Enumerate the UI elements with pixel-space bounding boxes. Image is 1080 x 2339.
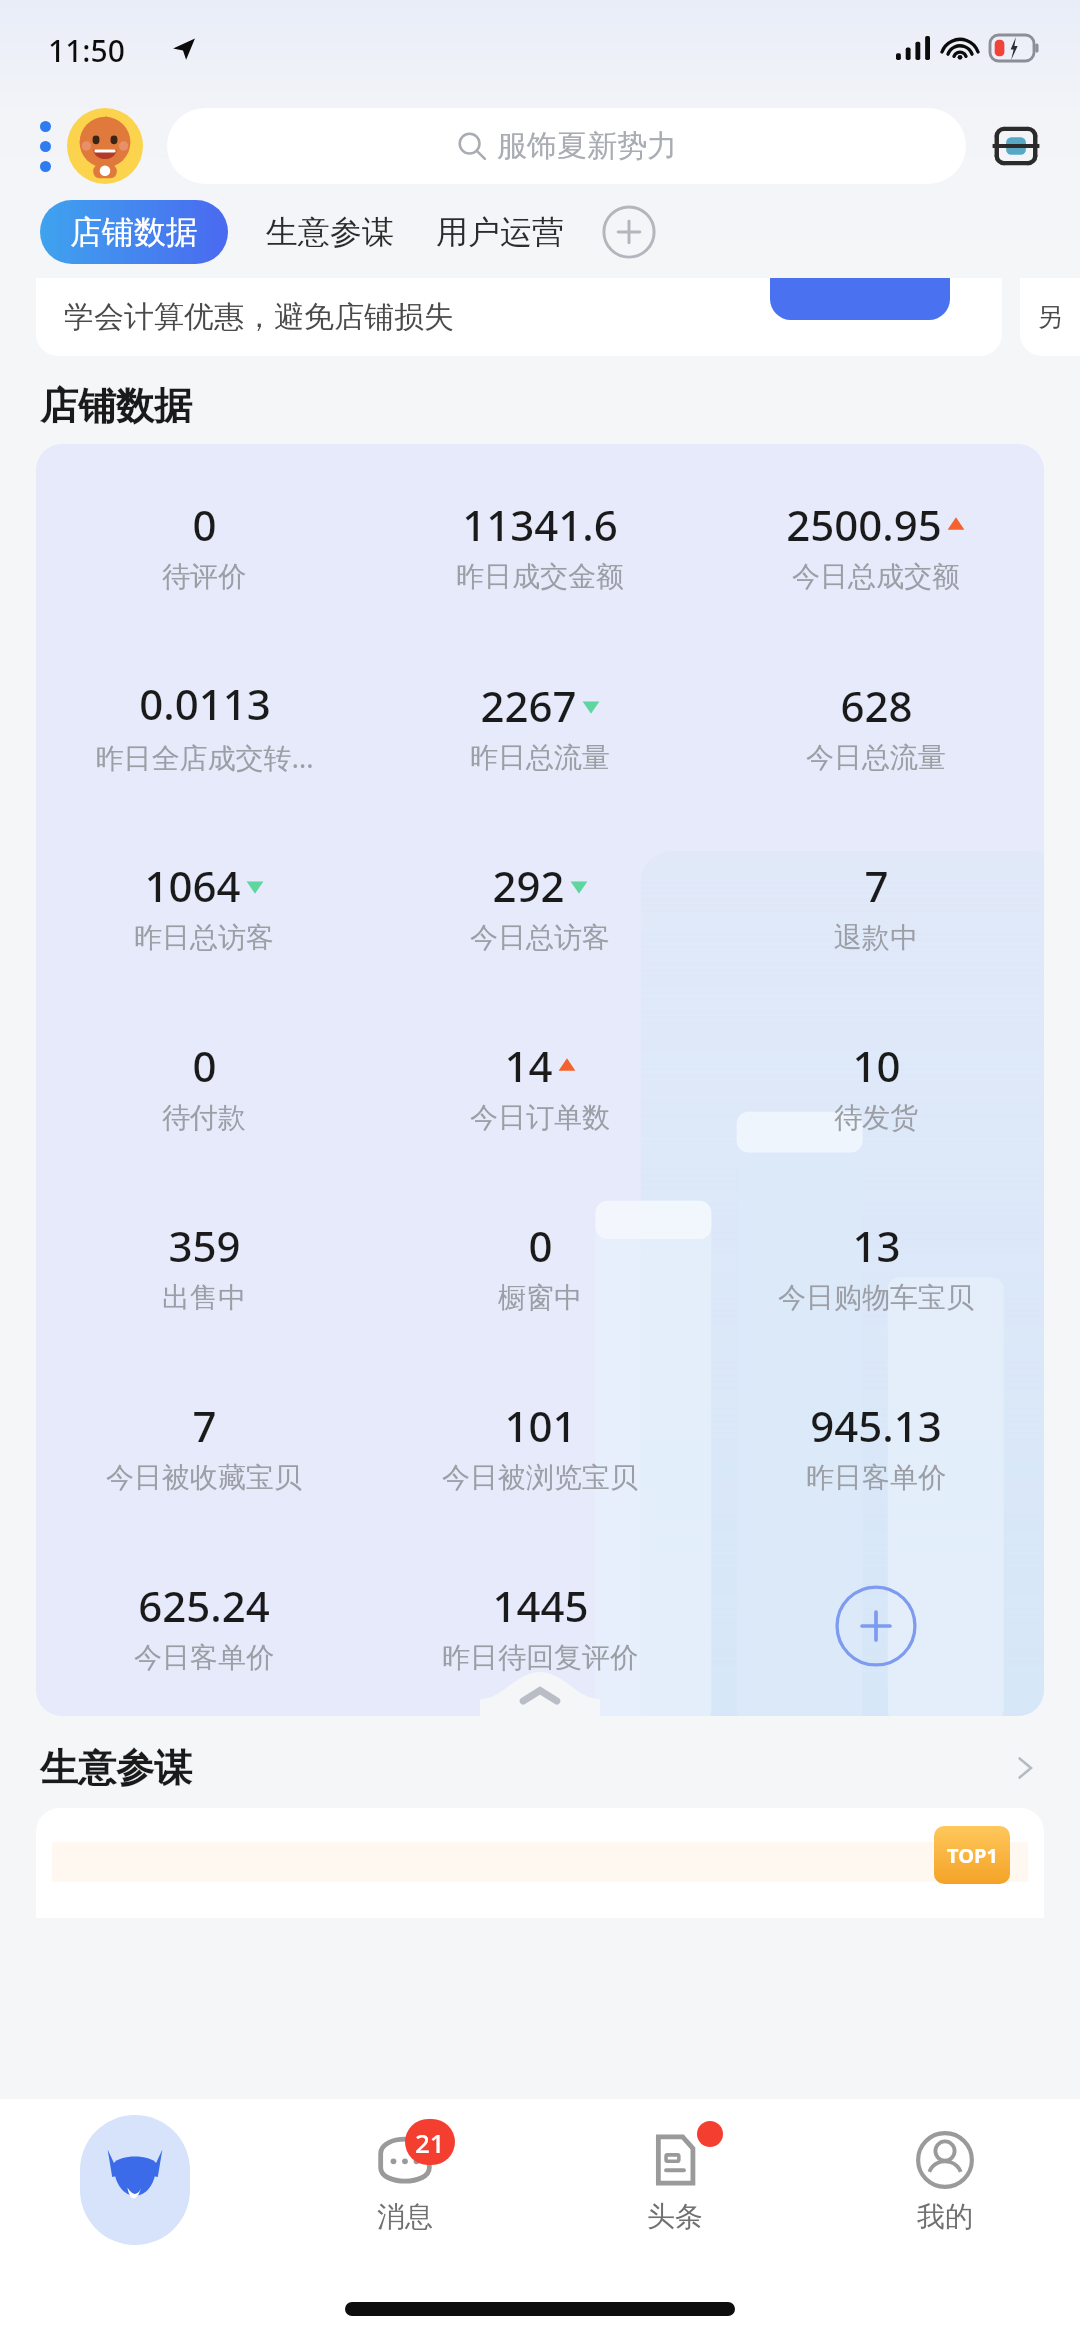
staticText: 退款中 bbox=[834, 920, 918, 955]
staticText: 2500.95 bbox=[786, 496, 942, 553]
staticText: 生意参谋 bbox=[40, 1744, 192, 1792]
staticText: 橱窗中 bbox=[498, 1280, 582, 1315]
button[interactable]: 2267 bbox=[464, 673, 616, 779]
button[interactable]: 2500.95 bbox=[780, 492, 972, 598]
staticText: 待发货 bbox=[834, 1100, 918, 1135]
button[interactable]: 1064 bbox=[128, 853, 280, 959]
button[interactable]: 11341.6 bbox=[450, 492, 630, 598]
staticText: 待付款 bbox=[162, 1100, 246, 1135]
button[interactable]: 0 bbox=[156, 492, 252, 598]
staticText: 生意参谋 bbox=[266, 212, 394, 252]
staticText: 359 bbox=[168, 1217, 241, 1274]
button[interactable]: 0 bbox=[156, 1033, 252, 1139]
staticText: 0 bbox=[192, 496, 217, 553]
other: Home bbox=[80, 2115, 190, 2245]
button[interactable]: 另 bbox=[1020, 278, 1080, 356]
staticText: 另 bbox=[1037, 301, 1063, 334]
staticText: 店铺数据 bbox=[70, 212, 198, 252]
staticText: 今日购物车宝贝 bbox=[778, 1280, 974, 1315]
staticText: 21 bbox=[415, 2125, 445, 2160]
staticText: 0 bbox=[192, 1037, 217, 1094]
button[interactable]: Home bbox=[0, 2115, 270, 2245]
button[interactable]: Collapse bbox=[480, 1672, 600, 1716]
button[interactable]: 生意参谋 bbox=[0, 1738, 1080, 1798]
button[interactable]: 10 bbox=[828, 1033, 924, 1139]
button[interactable]: 生意参谋 bbox=[252, 200, 408, 264]
staticText: 今日客单价 bbox=[134, 1640, 274, 1675]
staticText: 昨日总流量 bbox=[470, 740, 610, 775]
staticText: 14 bbox=[504, 1037, 553, 1094]
staticText: 今日总访客 bbox=[470, 920, 610, 955]
button[interactable]: 店铺数据 bbox=[40, 200, 228, 264]
button[interactable]: 625.24 bbox=[128, 1573, 280, 1679]
button[interactable]: 101 bbox=[436, 1393, 644, 1499]
button[interactable]: 头条 bbox=[540, 2115, 810, 2234]
button[interactable]: 628 bbox=[800, 673, 952, 779]
button[interactable]: 用户运营 bbox=[422, 200, 578, 264]
button[interactable]: Scan bbox=[986, 116, 1046, 176]
button[interactable]: TOP1 bbox=[36, 1808, 1044, 1918]
staticText: 今日被浏览宝贝 bbox=[442, 1460, 638, 1495]
button[interactable]: 21 bbox=[270, 2115, 540, 2234]
staticText: 13 bbox=[852, 1217, 901, 1274]
staticText: 今日总流量 bbox=[806, 740, 946, 775]
staticText: 1445 bbox=[492, 1577, 589, 1634]
button[interactable]: 0.0113 bbox=[89, 671, 320, 780]
staticText: 628 bbox=[840, 677, 913, 734]
staticText: 今日被收藏宝贝 bbox=[106, 1460, 302, 1495]
staticText: 0.0113 bbox=[139, 675, 271, 732]
staticText: 服饰夏新势力 bbox=[497, 127, 677, 165]
button[interactable]: 7 bbox=[828, 853, 924, 959]
button[interactable]: 945.13 bbox=[800, 1393, 952, 1499]
button[interactable]: Add tab bbox=[600, 203, 658, 261]
staticText: 11:50 bbox=[48, 30, 125, 71]
button[interactable]: More bbox=[34, 115, 57, 178]
staticText: 945.13 bbox=[810, 1397, 942, 1454]
staticText: 11341.6 bbox=[462, 496, 618, 553]
button[interactable]: 359 bbox=[156, 1213, 252, 1319]
staticText: 昨日全店成交转… bbox=[95, 738, 314, 776]
staticText: 我的 bbox=[917, 2199, 973, 2234]
staticText: 待评价 bbox=[162, 559, 246, 594]
staticText: 10 bbox=[852, 1037, 901, 1094]
button[interactable]: 13 bbox=[772, 1213, 980, 1319]
staticText: 292 bbox=[492, 857, 565, 914]
staticText: 昨日总访客 bbox=[134, 920, 274, 955]
staticText: TOP1 bbox=[947, 1842, 998, 1869]
staticText: 昨日待回复评价 bbox=[442, 1640, 638, 1675]
staticText: 学会计算优惠，避免店铺损失 bbox=[64, 298, 454, 336]
staticText: 625.24 bbox=[138, 1577, 270, 1634]
staticText: 今日订单数 bbox=[470, 1100, 610, 1135]
staticText: 用户运营 bbox=[436, 212, 564, 252]
button[interactable]: 我的 bbox=[810, 2115, 1080, 2234]
staticText: 头条 bbox=[647, 2199, 703, 2234]
button[interactable]: 1445 bbox=[436, 1573, 644, 1679]
button[interactable]: 服饰夏新势力 bbox=[167, 108, 966, 184]
staticText: 昨日成交金额 bbox=[456, 559, 624, 594]
button[interactable]: 292 bbox=[464, 853, 616, 959]
button[interactable]: 14 bbox=[464, 1033, 616, 1139]
staticText: 2267 bbox=[480, 677, 577, 734]
staticText: 今日总成交额 bbox=[792, 559, 960, 594]
button[interactable]: 学会计算优惠，避免店铺损失 bbox=[36, 278, 1002, 356]
staticText: 0 bbox=[528, 1217, 553, 1274]
staticText: 1064 bbox=[144, 857, 241, 914]
staticText: 昨日客单价 bbox=[806, 1460, 946, 1495]
staticText: 101 bbox=[504, 1397, 577, 1454]
button[interactable]: Add metric bbox=[835, 1585, 917, 1667]
button[interactable]: 7 bbox=[100, 1393, 308, 1499]
staticText: 7 bbox=[864, 857, 889, 914]
button[interactable]: Profile bbox=[67, 108, 143, 184]
staticText: 消息 bbox=[377, 2199, 433, 2234]
staticText: 店铺数据 bbox=[40, 382, 192, 430]
staticText: 出售中 bbox=[162, 1280, 246, 1315]
staticText: 7 bbox=[192, 1397, 217, 1454]
button[interactable]: 0 bbox=[492, 1213, 588, 1319]
